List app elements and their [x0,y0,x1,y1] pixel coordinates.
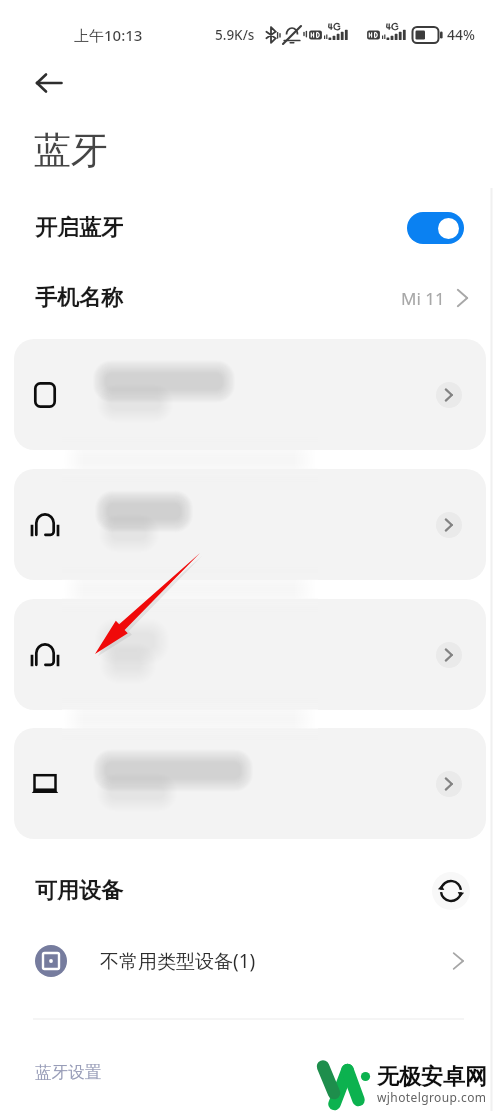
staticText: 蓝牙 [34,127,108,174]
staticText: 蓝牙设置 [35,1062,101,1083]
staticText: 手机名称 [35,284,123,312]
button[interactable]: 不常用类型设备(1) [0,928,500,994]
button[interactable]: Device details [14,728,486,839]
staticText: 开启蓝牙 [35,214,123,242]
staticText: Mi 11 [401,287,445,310]
button[interactable]: Device details [436,771,462,797]
button[interactable]: 蓝牙设置 [35,1056,101,1089]
button[interactable]: Refresh [432,872,470,910]
button[interactable]: Back [25,59,73,107]
staticText: 5.9K/s [215,26,255,44]
staticText: 上午10:13 [74,25,143,45]
button[interactable]: Device details [436,382,462,408]
button[interactable]: Device details [14,339,486,450]
button[interactable]: Device details [14,599,486,710]
button[interactable]: 手机名称 [0,265,500,331]
button[interactable]: 开启蓝牙 [0,194,500,261]
button[interactable]: Device details [436,642,462,668]
staticText: 可用设备 [35,877,123,905]
staticText: 不常用类型设备(1) [100,948,256,974]
button[interactable]: Device details [14,469,486,580]
button[interactable]: Device details [436,512,462,538]
staticText: 无极安卓网 [377,1063,487,1091]
staticText: 44% [447,25,475,44]
staticText: wjhotelgroup.com [377,1089,487,1105]
